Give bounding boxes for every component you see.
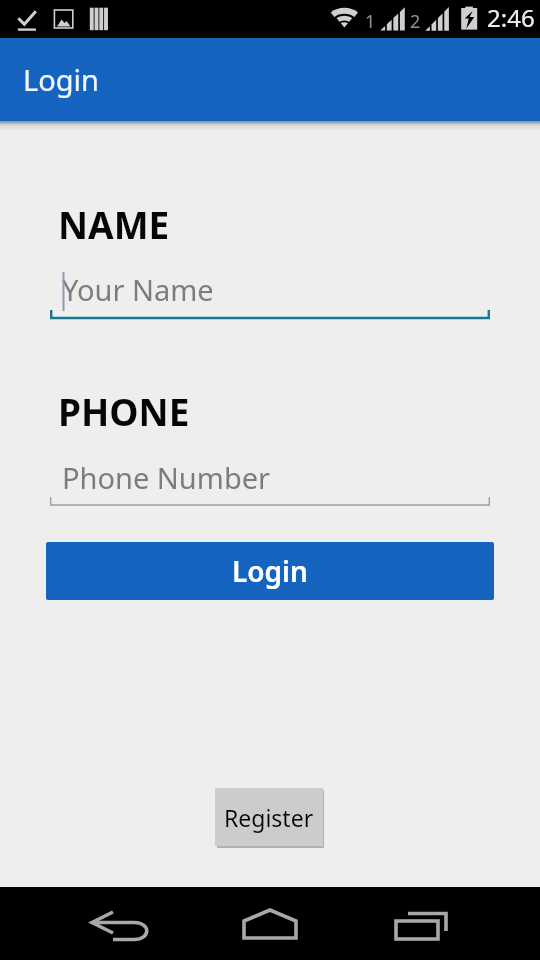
staticText: 1 [365, 9, 376, 34]
staticText: 2:46 [487, 1, 535, 34]
button[interactable]: Register [215, 788, 323, 846]
staticText: Login [23, 60, 99, 99]
button[interactable]: Recent apps [360, 887, 540, 960]
staticText: Your Name [62, 270, 214, 309]
staticText: Phone Number [62, 458, 271, 497]
staticText: PHONE [58, 386, 190, 436]
staticText: NAME [58, 199, 170, 249]
button[interactable]: Back [0, 887, 180, 960]
button[interactable]: Login [46, 542, 494, 600]
staticText: Register [224, 802, 314, 833]
button[interactable]: Phone Number [50, 448, 490, 511]
staticText: Login [232, 552, 308, 590]
staticText: 2 [410, 9, 421, 34]
button[interactable]: Home [180, 887, 360, 960]
button[interactable]: Your Name [50, 260, 490, 324]
